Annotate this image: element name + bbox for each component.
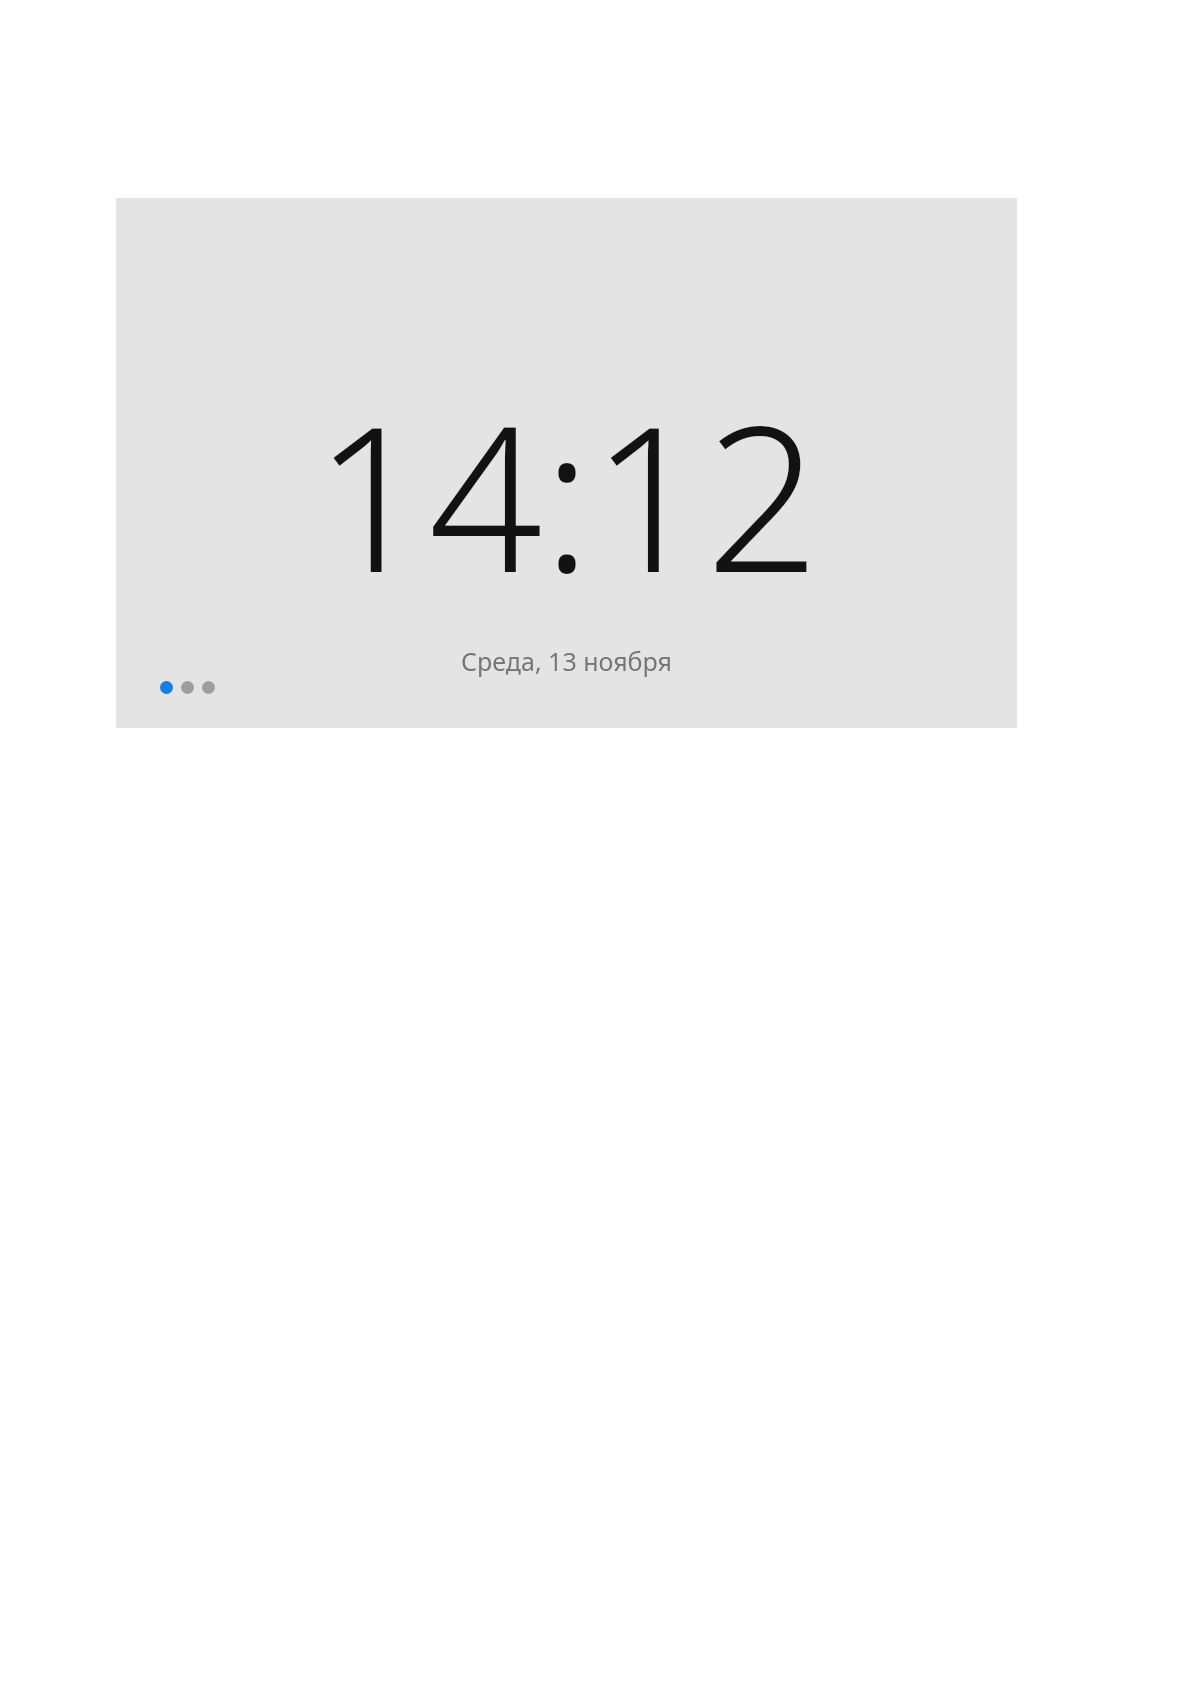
button[interactable]: 14:12 xyxy=(314,358,820,630)
other: Page indicator xyxy=(160,681,215,694)
button[interactable]: 14:12 xyxy=(116,198,1017,728)
button[interactable]: Page 2 xyxy=(181,681,194,694)
button[interactable]: Среда, 13 ноября xyxy=(461,644,672,678)
button[interactable]: Page 1, current xyxy=(160,681,173,694)
button[interactable]: Page 3 xyxy=(202,681,215,694)
